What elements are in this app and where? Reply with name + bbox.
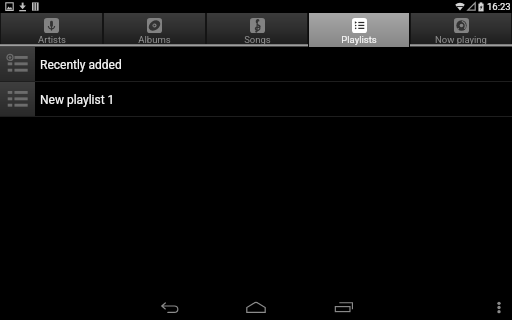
button[interactable]: Songs [206,13,308,47]
staticText: New playlist 1 [40,93,115,107]
staticText: Artists [38,34,66,45]
button[interactable]: Back [150,290,190,320]
button[interactable]: Recent apps [323,290,363,320]
button[interactable]: Playlists [308,13,410,47]
staticText: Recently added [40,58,122,72]
button[interactable]: Albums [103,13,206,47]
staticText: Now playing [435,34,487,45]
staticText: 16:23 [487,1,511,12]
staticText: Albums [138,34,171,45]
button[interactable]: New playlist 1 [0,82,512,116]
button[interactable]: Recently added [0,47,512,81]
button[interactable]: More options [486,297,512,317]
button[interactable]: Artists [0,13,103,47]
staticText: Songs [244,34,271,45]
staticText: Playlists [341,34,377,45]
button[interactable]: Now playing [410,13,512,47]
button[interactable]: Home [236,290,276,320]
